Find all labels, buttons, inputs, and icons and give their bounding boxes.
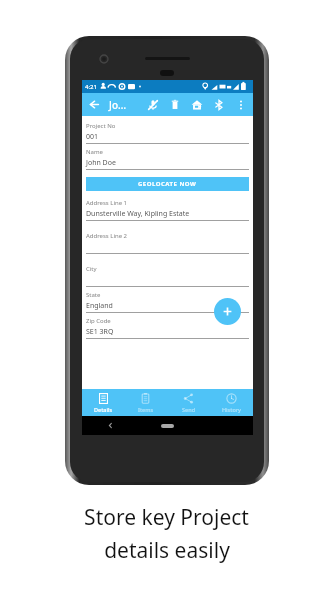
button[interactable]: Mute microphone bbox=[142, 93, 164, 116]
staticText: Dunsterville Way, Kipling Estate bbox=[86, 209, 190, 219]
button[interactable]: Back bbox=[82, 93, 105, 116]
staticText: 4:21 bbox=[85, 83, 97, 91]
staticText: John Doe bbox=[86, 158, 116, 168]
button[interactable]: Back bbox=[82, 416, 139, 435]
staticText: Items bbox=[138, 406, 154, 413]
staticText: England bbox=[86, 301, 113, 311]
button[interactable]: Home bbox=[186, 93, 208, 116]
staticText: SE1 3RQ bbox=[86, 327, 114, 337]
staticText: Address Line 2 bbox=[86, 232, 128, 240]
button[interactable]: Items bbox=[124, 389, 167, 416]
staticText: GEOLOCATE NOW bbox=[138, 180, 197, 188]
staticText: Jo… bbox=[109, 98, 127, 112]
button[interactable]: Add bbox=[214, 298, 241, 325]
button[interactable]: Send bbox=[167, 389, 210, 416]
staticText: Address Line 1 bbox=[86, 199, 128, 207]
staticText: History bbox=[222, 406, 241, 413]
staticText: Details bbox=[94, 406, 113, 413]
staticText: Project No bbox=[86, 122, 116, 130]
button[interactable]: More options bbox=[230, 93, 252, 116]
staticText: 001 bbox=[86, 132, 99, 142]
staticText: Zip Code bbox=[86, 317, 111, 325]
button[interactable]: Address Line 1 bbox=[86, 199, 249, 221]
button[interactable]: Home bbox=[139, 416, 196, 435]
staticText: Send bbox=[182, 406, 196, 413]
button[interactable]: State bbox=[86, 291, 249, 313]
staticText: State bbox=[86, 291, 101, 299]
button[interactable]: Zip Code bbox=[86, 317, 249, 339]
button[interactable]: Address Line 2 bbox=[86, 232, 249, 254]
button[interactable]: Delete bbox=[164, 93, 186, 116]
staticText: Store key Project bbox=[84, 503, 249, 532]
staticText: details easily bbox=[104, 536, 230, 565]
button[interactable]: City bbox=[86, 265, 249, 287]
button[interactable]: Details bbox=[82, 389, 124, 416]
button[interactable]: Name bbox=[86, 148, 249, 170]
staticText: City bbox=[86, 265, 97, 273]
staticText: Name bbox=[86, 148, 103, 156]
button[interactable]: History bbox=[210, 389, 253, 416]
button[interactable]: Project No bbox=[86, 122, 249, 144]
button[interactable]: GEOLOCATE NOW bbox=[86, 177, 249, 191]
button[interactable]: Bluetooth bbox=[208, 93, 230, 116]
